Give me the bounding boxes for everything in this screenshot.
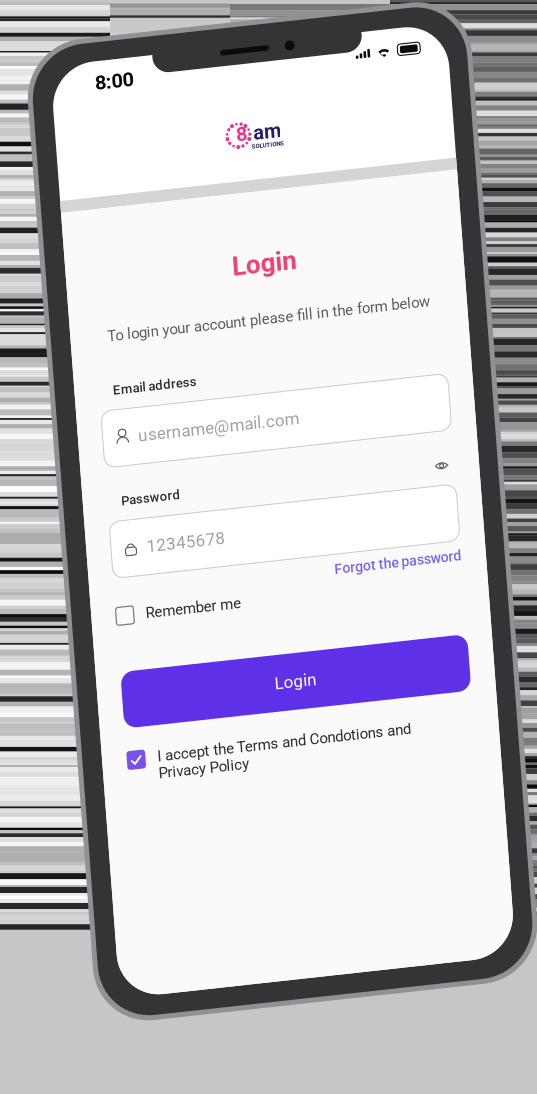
button[interactable]: Remember me bbox=[25, 549, 378, 567]
button[interactable]: Accept terms bbox=[25, 694, 44, 713]
staticText: Password bbox=[39, 435, 99, 451]
button[interactable]: Show password bbox=[358, 436, 372, 450]
staticText: Remember me bbox=[55, 549, 152, 567]
staticText: Email address bbox=[39, 323, 124, 339]
button[interactable]: Login bbox=[25, 614, 378, 671]
staticText: username@mail.com bbox=[61, 369, 225, 390]
staticText: To login your account please fill in the… bbox=[37, 268, 365, 285]
staticText: 8:00 bbox=[44, 10, 83, 34]
staticText: I accept the Terms and Condotions and Pr… bbox=[56, 694, 314, 728]
staticText: 12345678 bbox=[61, 481, 141, 501]
